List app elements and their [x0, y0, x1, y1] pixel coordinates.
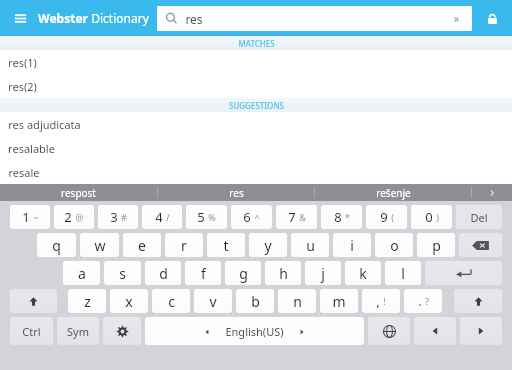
- button[interactable]: k: [345, 261, 381, 285]
- staticText: (: [391, 211, 394, 223]
- button[interactable]: 8: [321, 205, 362, 229]
- staticText: MATCHES: [238, 38, 275, 49]
- button[interactable]: e: [123, 233, 161, 257]
- button[interactable]: .: [404, 289, 442, 313]
- staticText: w: [94, 236, 106, 255]
- button[interactable]: 6: [231, 205, 272, 229]
- button[interactable]: respost: [0, 184, 157, 201]
- staticText: v: [209, 292, 217, 311]
- button[interactable]: Backspace: [459, 233, 502, 257]
- button[interactable]: y: [249, 233, 287, 257]
- button[interactable]: 0: [411, 205, 452, 229]
- button[interactable]: d: [145, 261, 181, 285]
- button[interactable]: resale: [0, 160, 512, 184]
- staticText: 4: [155, 208, 163, 226]
- staticText: Webster: [38, 10, 88, 26]
- staticText: #: [121, 211, 127, 223]
- button[interactable]: q: [37, 233, 76, 257]
- staticText: f: [201, 264, 206, 283]
- button[interactable]: r: [165, 233, 203, 257]
- button[interactable]: Shift: [10, 289, 57, 313]
- staticText: *: [345, 211, 350, 223]
- staticText: resalable: [8, 141, 55, 156]
- button[interactable]: v: [194, 289, 232, 313]
- button[interactable]: 3: [98, 205, 138, 229]
- button[interactable]: res: [157, 6, 472, 31]
- button[interactable]: Del: [456, 205, 502, 229]
- button[interactable]: Shift: [454, 289, 502, 313]
- button[interactable]: Keyboard settings: [103, 317, 141, 345]
- button[interactable]: 7: [276, 205, 317, 229]
- button[interactable]: 2: [54, 205, 94, 229]
- staticText: l: [401, 264, 405, 283]
- staticText: 1: [22, 208, 30, 226]
- staticText: !: [383, 295, 386, 307]
- button[interactable]: i: [333, 233, 371, 257]
- staticText: p: [432, 236, 441, 255]
- staticText: /: [166, 211, 170, 223]
- button[interactable]: Sym: [57, 317, 99, 345]
- staticText: res: [185, 11, 203, 27]
- staticText: b: [251, 292, 260, 311]
- button[interactable]: a: [63, 261, 100, 285]
- staticText: 0: [425, 208, 433, 226]
- button[interactable]: Cursor left: [414, 317, 456, 345]
- staticText: t: [223, 236, 229, 255]
- staticText: s: [119, 264, 126, 283]
- button[interactable]: Lock: [478, 4, 506, 32]
- button[interactable]: res: [158, 184, 314, 201]
- button[interactable]: Change input language: [368, 317, 410, 345]
- staticText: ): [436, 211, 439, 223]
- button[interactable]: p: [417, 233, 455, 257]
- button[interactable]: x: [110, 289, 148, 313]
- button[interactable]: f: [185, 261, 221, 285]
- button[interactable]: ,: [362, 289, 400, 313]
- button[interactable]: u: [291, 233, 329, 257]
- button[interactable]: 9: [366, 205, 407, 229]
- button[interactable]: English(US): [145, 317, 364, 345]
- staticText: %: [208, 211, 216, 223]
- staticText: 8: [334, 208, 342, 226]
- button[interactable]: Open navigation menu: [6, 4, 34, 32]
- button[interactable]: z: [68, 289, 106, 313]
- button[interactable]: res(2): [0, 74, 512, 98]
- staticText: 7: [288, 208, 296, 226]
- button[interactable]: 1: [10, 205, 50, 229]
- staticText: 2: [64, 208, 72, 226]
- button[interactable]: o: [375, 233, 413, 257]
- button[interactable]: m: [320, 289, 358, 313]
- button[interactable]: w: [80, 233, 119, 257]
- button[interactable]: t: [207, 233, 245, 257]
- staticText: .: [418, 292, 422, 310]
- button[interactable]: More suggestions: [472, 184, 512, 201]
- button[interactable]: Enter: [425, 261, 502, 285]
- button[interactable]: g: [225, 261, 261, 285]
- staticText: Sym: [67, 324, 89, 339]
- staticText: resale: [8, 165, 40, 180]
- button[interactable]: Ctrl: [10, 317, 53, 345]
- button[interactable]: res adjudicata: [0, 112, 512, 136]
- button[interactable]: res(1): [0, 50, 512, 74]
- button[interactable]: 5: [186, 205, 227, 229]
- button[interactable]: c: [152, 289, 190, 313]
- button[interactable]: b: [236, 289, 274, 313]
- button[interactable]: n: [278, 289, 316, 313]
- staticText: respost: [61, 186, 96, 200]
- button[interactable]: rešenje: [315, 184, 471, 201]
- button[interactable]: Cursor right: [460, 317, 502, 345]
- button[interactable]: s: [104, 261, 141, 285]
- button[interactable]: j: [305, 261, 341, 285]
- staticText: 9: [380, 208, 388, 226]
- staticText: res: [229, 186, 244, 200]
- staticText: English(US): [225, 324, 284, 339]
- button[interactable]: h: [265, 261, 301, 285]
- button[interactable]: resalable: [0, 136, 512, 160]
- staticText: ,: [376, 292, 380, 310]
- button[interactable]: Clear search: [448, 11, 464, 27]
- button[interactable]: l: [385, 261, 421, 285]
- staticText: c: [168, 292, 175, 311]
- staticText: e: [138, 236, 146, 255]
- button[interactable]: 4: [142, 205, 182, 229]
- staticText: ~: [33, 211, 39, 223]
- staticText: @: [75, 211, 84, 223]
